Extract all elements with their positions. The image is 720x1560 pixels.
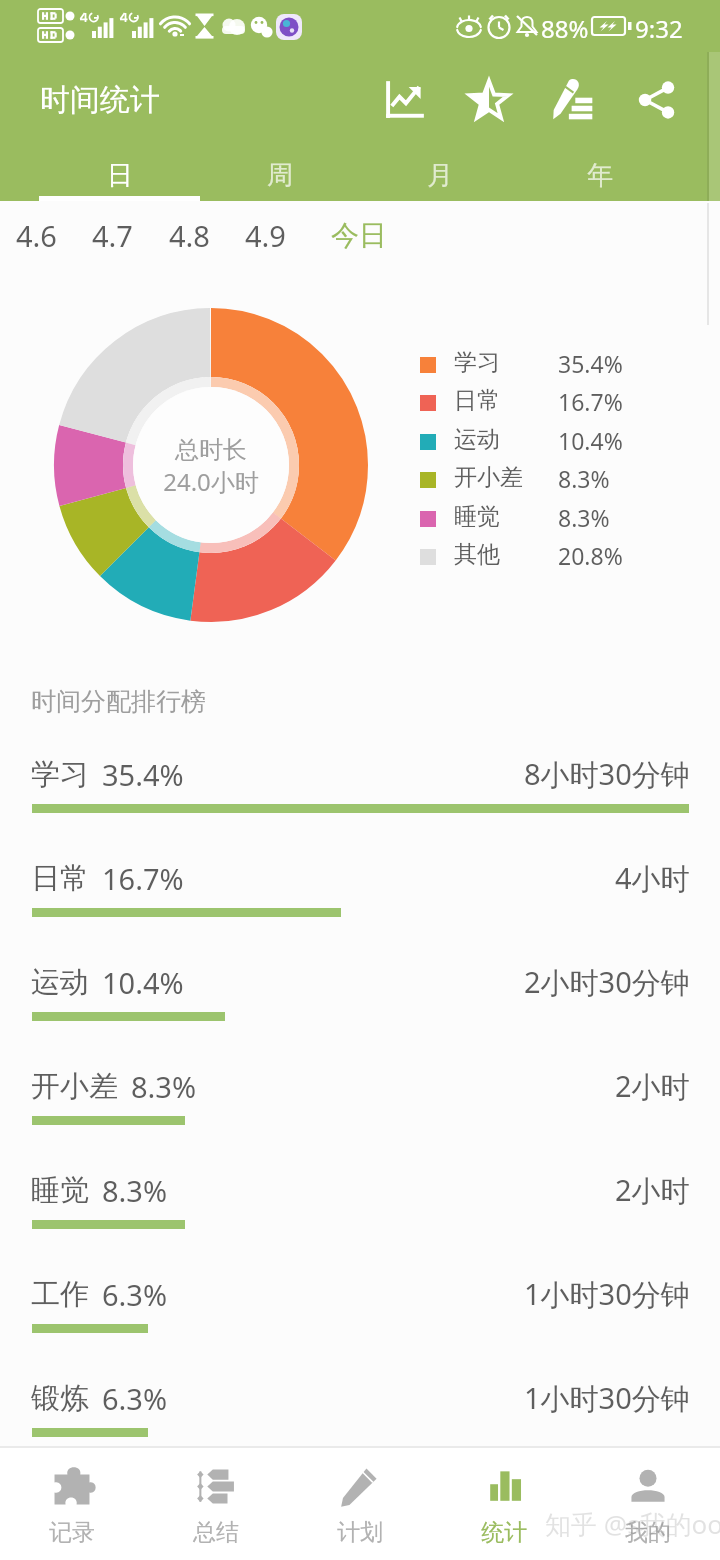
staticText: 6.3% — [102, 1379, 168, 1418]
staticText: 总时长 24.0小时 — [136, 435, 286, 498]
staticText: 35.4% — [558, 348, 623, 379]
staticText: 35.4% — [102, 755, 184, 794]
staticText: 10.4% — [102, 963, 184, 1002]
staticText: 开小差 — [454, 463, 523, 492]
staticText: 日 — [107, 159, 133, 192]
button[interactable]: 睡觉 — [0, 1159, 720, 1263]
button[interactable]: 开小差 — [0, 1055, 720, 1159]
staticText: 知乎 @s我的oo — [545, 1506, 720, 1542]
staticText: 日常 — [31, 860, 89, 897]
button[interactable]: 4.6 — [0, 201, 74, 269]
staticText: 锻炼 — [31, 1380, 89, 1417]
staticText: 88% — [541, 12, 589, 45]
button[interactable]: Rating — [450, 52, 528, 148]
button[interactable]: Edit note — [534, 52, 612, 148]
button[interactable]: 4.8 — [151, 201, 227, 269]
staticText: 8.3% — [131, 1067, 197, 1106]
staticText: 8.3% — [102, 1171, 168, 1210]
button[interactable]: 4.7 — [74, 201, 150, 269]
staticText: 日常 — [454, 386, 500, 415]
staticText: 4.9 — [245, 216, 286, 255]
staticText: 其他 — [454, 540, 500, 569]
staticText: 10.4% — [558, 425, 623, 456]
staticText: 学习 — [31, 756, 89, 793]
staticText: 学习 — [454, 348, 500, 377]
staticText: 计划 — [337, 1518, 383, 1547]
button[interactable]: 工作 — [0, 1263, 720, 1367]
staticText: 周 — [267, 159, 293, 192]
staticText: 时间统计 — [40, 81, 160, 119]
staticText: 6.3% — [102, 1275, 168, 1314]
button[interactable]: 计划 — [288, 1448, 432, 1560]
staticText: 年 — [587, 159, 613, 192]
staticText: 4小时 — [615, 858, 690, 898]
button[interactable]: 日 — [39, 149, 200, 201]
staticText: 1小时30分钟 — [524, 1274, 690, 1314]
staticText: 2小时 — [615, 1170, 690, 1210]
staticText: 8小时30分钟 — [524, 754, 690, 794]
staticText: 4.7 — [92, 216, 133, 255]
button[interactable]: 总结 — [144, 1448, 288, 1560]
staticText: 月 — [427, 159, 453, 192]
button[interactable]: 4.9 — [227, 201, 303, 269]
staticText: 4.6 — [16, 216, 57, 255]
button[interactable]: 运动 — [0, 951, 720, 1055]
staticText: 今日 — [331, 218, 387, 253]
staticText: 睡觉 — [31, 1172, 89, 1209]
staticText: 工作 — [31, 1276, 89, 1313]
staticText: 睡觉 — [454, 502, 500, 531]
staticText: 2小时 — [615, 1066, 690, 1106]
button[interactable]: Share — [618, 52, 696, 148]
staticText: 16.7% — [558, 386, 623, 417]
button[interactable]: 今日 — [313, 201, 405, 269]
staticText: 4.8 — [169, 216, 210, 255]
button[interactable]: 日常 — [0, 847, 720, 951]
button[interactable]: 我的 — [576, 1448, 720, 1560]
button[interactable]: Trend chart — [366, 52, 444, 148]
staticText: 记录 — [49, 1518, 95, 1547]
staticText: 运动 — [454, 425, 500, 454]
staticText: 8.3% — [558, 463, 610, 494]
staticText: 1小时30分钟 — [524, 1378, 690, 1418]
button[interactable]: 记录 — [0, 1448, 144, 1560]
staticText: 2小时30分钟 — [524, 962, 690, 1002]
staticText: 开小差 — [31, 1068, 118, 1105]
button[interactable]: 年 — [519, 149, 680, 201]
staticText: 9:32 — [635, 12, 683, 45]
staticText: 总结 — [193, 1518, 239, 1547]
staticText: 运动 — [31, 964, 89, 1001]
staticText: 16.7% — [102, 859, 184, 898]
staticText: 统计 — [481, 1518, 527, 1547]
staticText: 8.3% — [558, 502, 610, 533]
button[interactable]: 锻炼 — [0, 1367, 720, 1471]
button[interactable]: 周 — [199, 149, 360, 201]
button[interactable]: 学习 — [0, 743, 720, 847]
button[interactable]: 统计 — [432, 1448, 576, 1560]
button[interactable]: 月 — [359, 149, 520, 201]
staticText: 我的 — [625, 1518, 671, 1547]
staticText: 20.8% — [558, 540, 623, 571]
staticText: 时间分配排行榜 — [31, 686, 206, 717]
